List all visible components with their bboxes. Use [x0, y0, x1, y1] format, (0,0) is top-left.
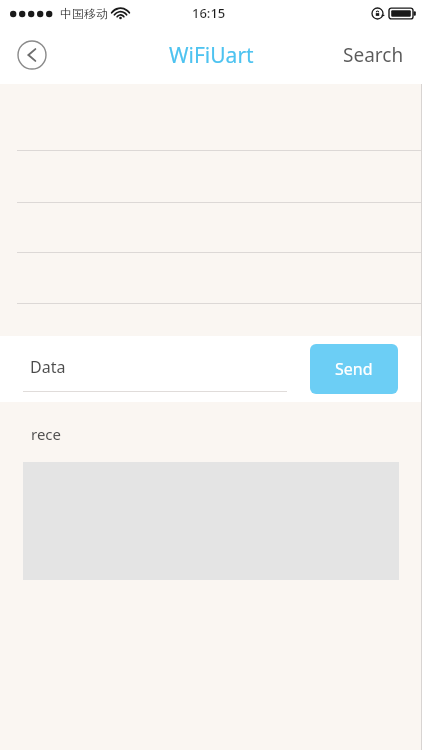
staticText: rece [31, 424, 62, 444]
button[interactable]: Send [310, 344, 398, 394]
staticText: Data [30, 356, 66, 378]
staticText: Send [335, 358, 373, 380]
staticText: Search [343, 42, 404, 68]
button[interactable]: Search [339, 36, 408, 74]
button[interactable]: Back [14, 37, 50, 73]
button[interactable]: Data [23, 346, 287, 392]
staticText: WiFiUart [169, 41, 254, 70]
staticText: 中国移动 [60, 6, 108, 21]
staticText: 16:15 [192, 4, 226, 22]
